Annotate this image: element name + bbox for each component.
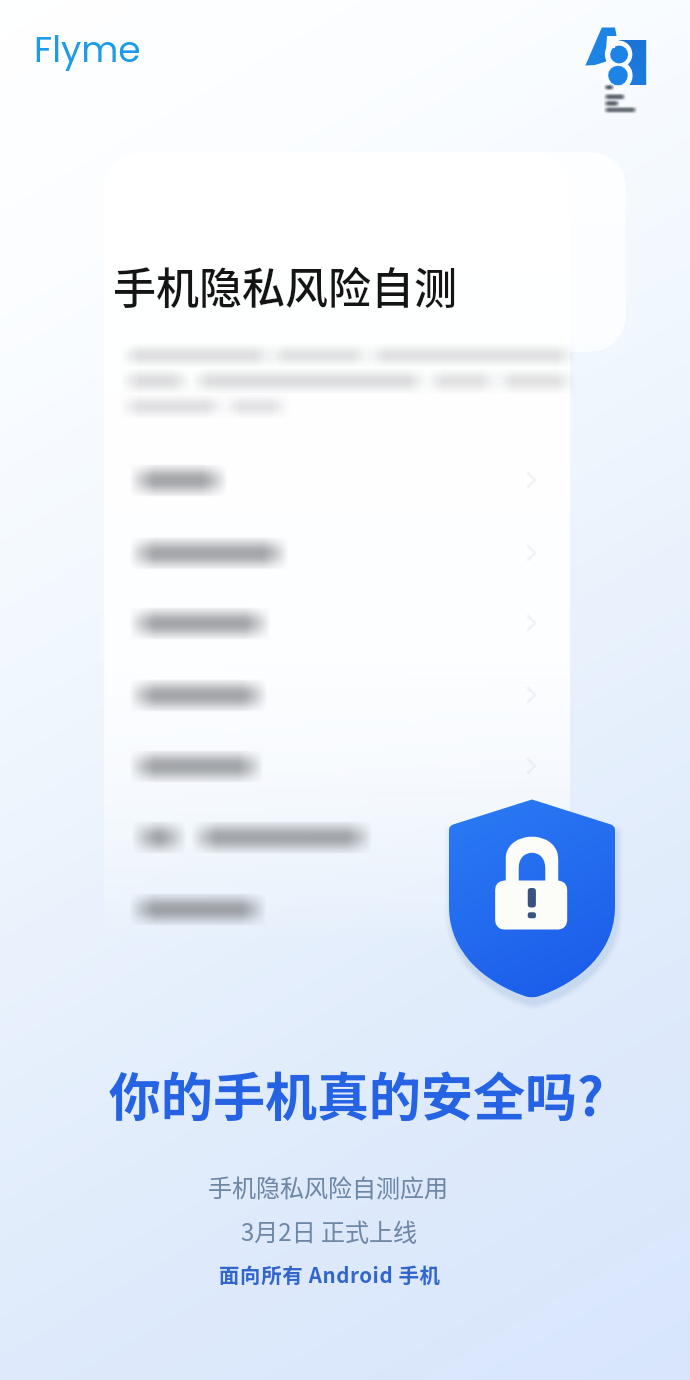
staticText: 手机隐私风险自测 [113,254,457,316]
staticText: 手机隐私风险自测应用 [208,1169,448,1204]
button[interactable]: Privacy shield [441,790,623,1006]
button[interactable]: Privacy check item 7 [128,879,548,939]
button[interactable]: Privacy check item 6 [128,807,548,867]
button[interactable]: Privacy check item 4 [128,665,548,725]
button[interactable]: Privacy check item 2 [128,523,548,583]
staticText: 面向所有 Android 手机 [219,1259,441,1289]
staticText: 3月2日 正式上线 [241,1213,418,1248]
staticText: 你的手机真的安全吗? [109,1056,604,1131]
button[interactable]: Privacy check item 3 [128,593,548,653]
staticText: Flyme [34,24,141,74]
button[interactable]: Flyme [34,24,141,74]
button[interactable]: Privacy check item 1 [128,450,548,510]
button[interactable]: Meizu 18th anniversary [583,25,663,125]
button[interactable]: Privacy check item 5 [128,736,548,796]
